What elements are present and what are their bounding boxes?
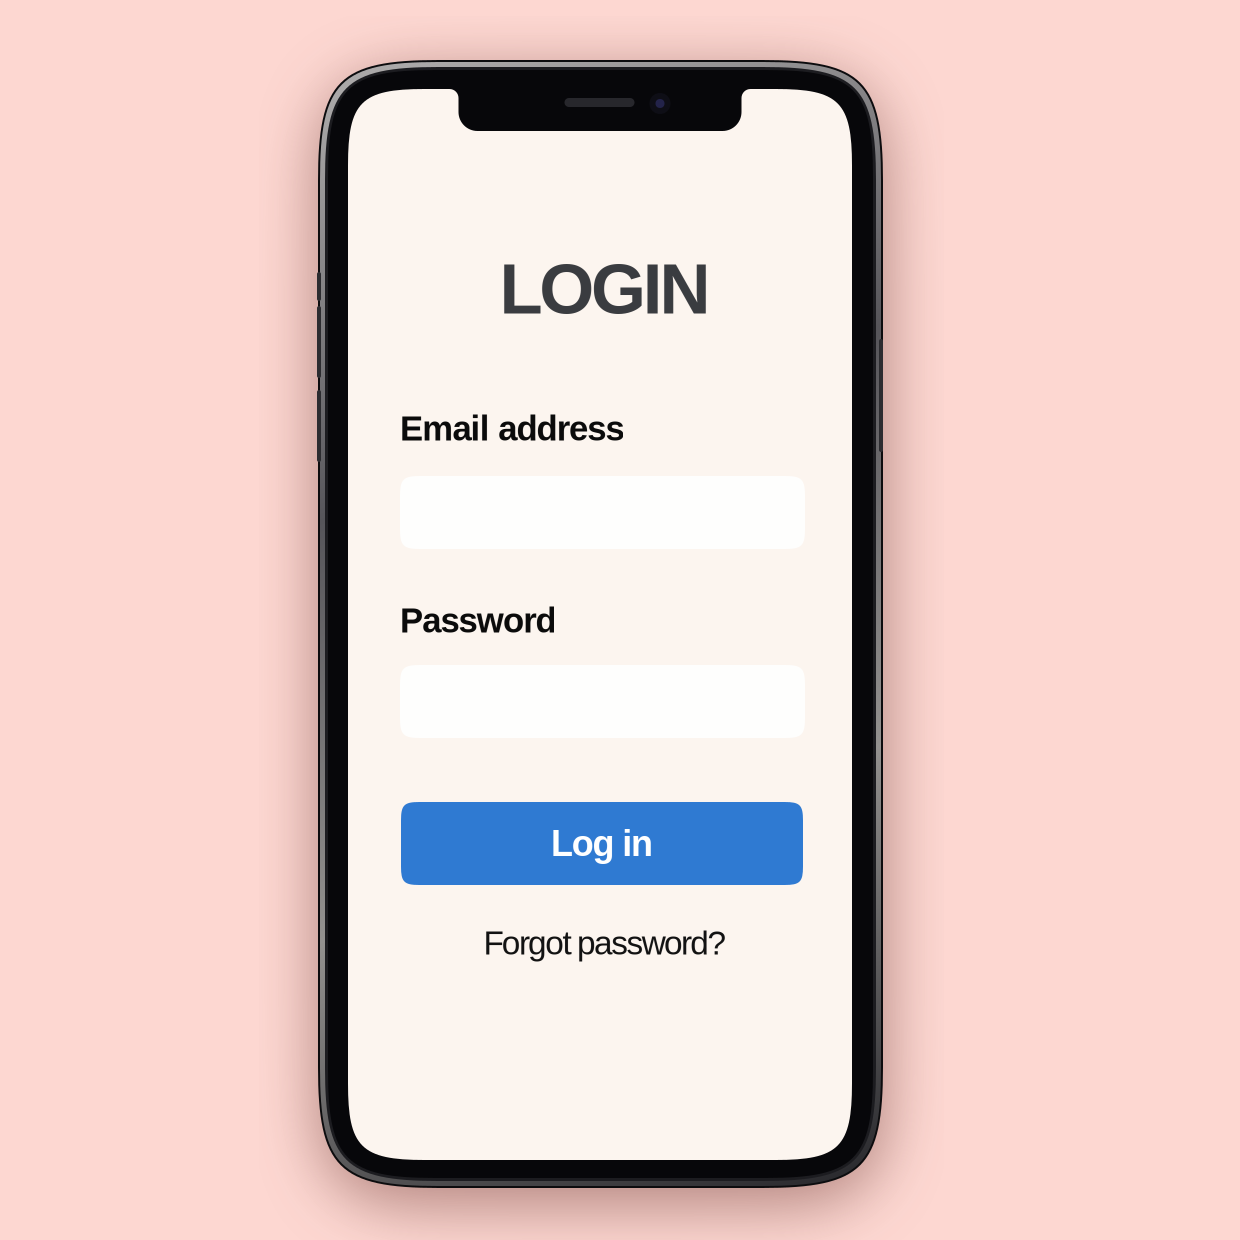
- button[interactable]: Log in: [401, 802, 803, 885]
- button[interactable]: Forgot password?: [353, 923, 857, 963]
- staticText: Log in: [551, 823, 653, 864]
- staticText: Email address: [400, 409, 624, 448]
- staticText: LOGIN: [499, 249, 711, 328]
- staticText: Forgot password?: [483, 924, 726, 962]
- staticText: Password: [400, 601, 556, 640]
